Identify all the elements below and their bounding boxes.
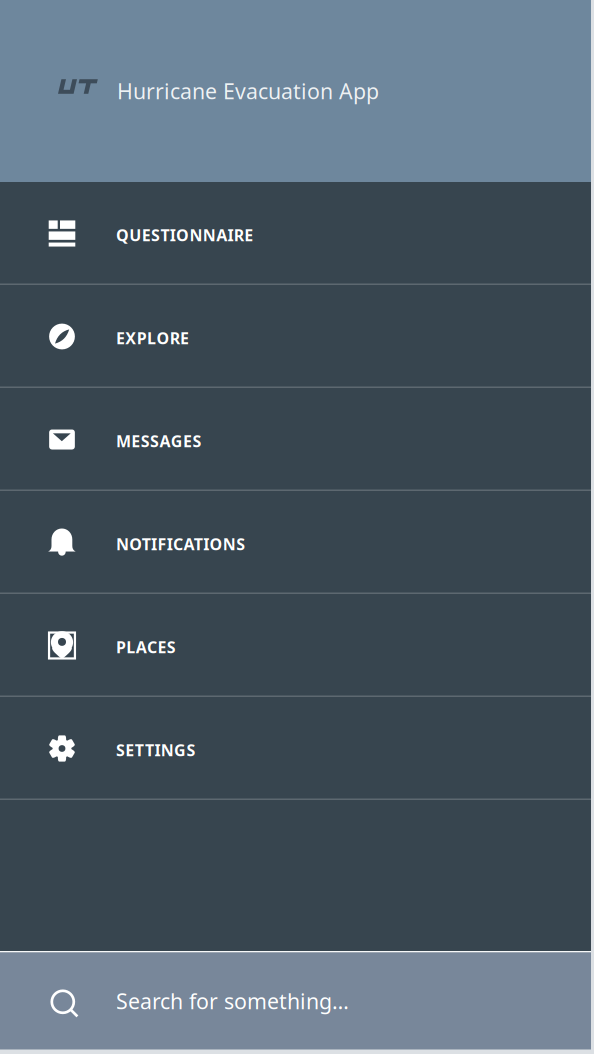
staticText: MESSAGES (116, 430, 201, 452)
button[interactable]: SETTINGS (0, 697, 591, 800)
button[interactable]: PLACES (0, 594, 591, 697)
staticText: EXPLORE (116, 327, 189, 349)
button[interactable]: Search for something… (0, 952, 591, 1049)
staticText: SETTINGS (116, 739, 195, 761)
button[interactable]: NOTIFICATIONS (0, 491, 591, 594)
staticText: Hurricane Evacuation App (117, 77, 379, 105)
staticText: Search for something… (116, 987, 349, 1015)
button[interactable]: QUESTIONNAIRE (0, 182, 591, 285)
staticText: PLACES (116, 636, 176, 658)
staticText: NOTIFICATIONS (116, 533, 245, 555)
button[interactable]: EXPLORE (0, 285, 591, 388)
staticText: QUESTIONNAIRE (116, 224, 253, 246)
button[interactable]: MESSAGES (0, 388, 591, 491)
